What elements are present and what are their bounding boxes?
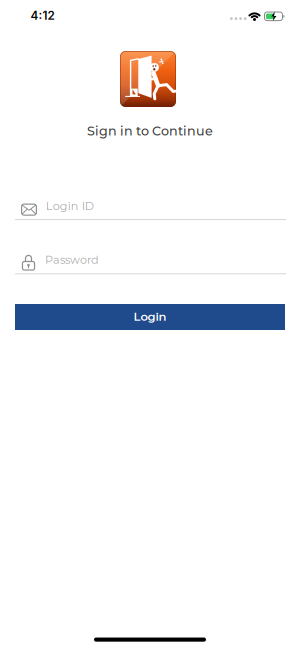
button[interactable]: Login	[15, 304, 285, 330]
staticText: 4:12	[30, 8, 54, 23]
button[interactable]: Login ID	[15, 196, 286, 224]
staticText: Login	[133, 309, 166, 323]
staticText: Login ID	[46, 199, 94, 213]
button[interactable]: Password	[15, 249, 286, 277]
staticText: Password	[45, 253, 99, 267]
staticText: Sign in to Continue	[87, 123, 213, 139]
